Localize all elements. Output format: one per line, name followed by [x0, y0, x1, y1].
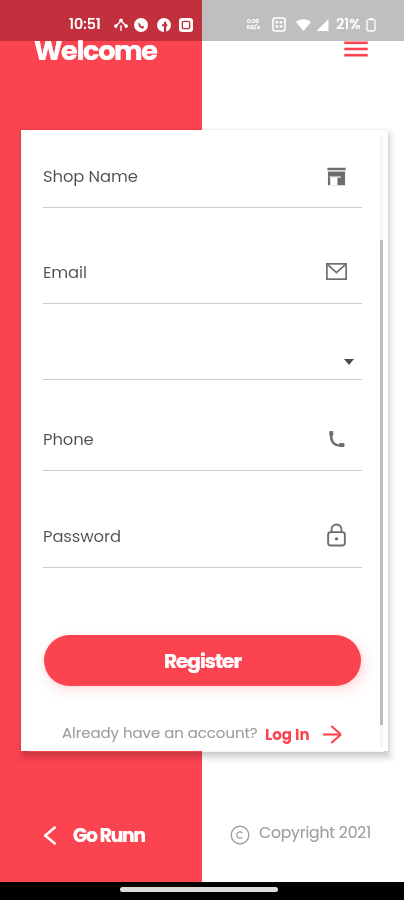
staticText: Password — [43, 525, 122, 548]
staticText: Register — [164, 647, 241, 675]
staticText: Phone — [43, 428, 94, 451]
staticText: Already have an account? — [62, 722, 258, 743]
staticText: 10:51 — [69, 14, 101, 34]
button[interactable]: Register — [44, 635, 361, 686]
staticText: KB/s — [247, 23, 260, 31]
button[interactable]: Log In — [265, 721, 341, 747]
staticText: Welcome — [34, 32, 157, 70]
staticText: 0.06 — [247, 17, 260, 25]
button[interactable]: Go Runn — [44, 822, 145, 848]
staticText: Log In — [265, 724, 310, 745]
button[interactable]: Menu — [334, 27, 378, 71]
staticText: 21% — [336, 14, 361, 34]
staticText: Shop Name — [43, 165, 138, 188]
staticText: Go Runn — [73, 822, 145, 848]
staticText: Email — [43, 261, 87, 284]
staticText: Copyright 2021 — [259, 822, 371, 844]
